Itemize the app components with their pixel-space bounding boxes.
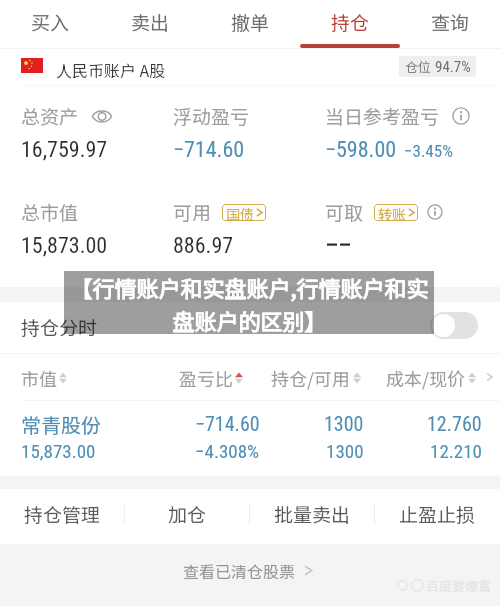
staticText: 查看已清仓股票 [183, 559, 296, 582]
button[interactable]: 批量卖出 [250, 486, 375, 541]
staticText: 卖出 [131, 8, 170, 36]
staticText: 可用 [173, 198, 212, 226]
button[interactable]: 查询 [400, 0, 500, 44]
staticText: 94.7% [435, 58, 471, 76]
staticText: −4.308% [195, 440, 260, 462]
button[interactable] [0, 401, 500, 475]
staticText: 16,759.97 [21, 137, 108, 163]
staticText: 15,873.00 [21, 440, 96, 462]
button[interactable]: 持仓/可用 [271, 365, 361, 391]
staticText: 12.760 [427, 412, 482, 435]
button[interactable]: 国债 [226, 204, 264, 221]
staticText: 【行情账户和实盘账户,行情账户和实 [70, 271, 429, 303]
button[interactable]: 盈亏比 [179, 365, 243, 391]
button[interactable]: 仓位 [399, 56, 476, 77]
staticText: −714.60 [173, 137, 245, 163]
staticText: 15,873.00 [21, 233, 108, 259]
staticText: 总市值 [21, 198, 79, 226]
staticText: −714.60 [195, 412, 260, 435]
other: 显示/隐藏金额 [92, 109, 112, 124]
staticText: 国债 [226, 204, 254, 221]
staticText: 总资产 [21, 102, 79, 130]
staticText: 1300 [326, 440, 364, 462]
staticText: 持仓 [331, 8, 370, 36]
staticText: 浮动盈亏 [173, 102, 250, 130]
staticText: 转账 [378, 204, 406, 221]
staticText: 持仓/可用 [271, 365, 351, 391]
staticText: 可取 [325, 198, 364, 226]
staticText: 持仓管理 [24, 500, 101, 528]
staticText: 成本/现价 [386, 365, 466, 391]
staticText: 百度要爆富 [426, 576, 492, 595]
staticText: 市值 [21, 365, 57, 391]
staticText: 批量卖出 [274, 500, 351, 528]
button[interactable]: 买入 [0, 0, 100, 44]
button[interactable]: 成本/现价 [386, 365, 476, 391]
button[interactable]: 止盈止损 [375, 486, 500, 541]
other: 说明 [427, 204, 443, 220]
staticText: 1300 [324, 412, 364, 435]
staticText: 买入 [31, 8, 70, 36]
button[interactable]: 加仓 [125, 486, 250, 541]
staticText: 查询 [431, 8, 470, 36]
staticText: 持仓分时 [21, 313, 98, 341]
staticText: 当日参考盈亏 [325, 102, 440, 130]
staticText: 加仓 [168, 500, 207, 528]
staticText: −3.45% [404, 141, 453, 161]
button[interactable]: 查看已清仓股票 [183, 559, 314, 582]
staticText: 仓位 [405, 57, 432, 76]
button[interactable]: 卖出 [100, 0, 200, 44]
staticText: 止盈止损 [399, 500, 476, 528]
staticText: 886.97 [173, 233, 234, 259]
button[interactable]: 转账 [378, 204, 416, 221]
staticText: 盈亏比 [179, 365, 233, 391]
button[interactable]: 持仓 [300, 0, 400, 44]
button[interactable]: 撤单 [200, 0, 300, 44]
staticText: 人民币账户 A股 [56, 58, 166, 81]
button[interactable]: 持仓分时 开关 [430, 312, 478, 339]
staticText: 撤单 [231, 8, 270, 36]
other: 说明 [452, 107, 470, 125]
staticText: 12.210 [430, 440, 482, 462]
button[interactable]: 持仓管理 [0, 486, 125, 541]
staticText: 常青股份 [21, 410, 101, 439]
staticText: −598.00 [325, 137, 397, 163]
staticText: 盘账户的区别】 [172, 304, 327, 334]
button[interactable]: 市值 [21, 365, 67, 391]
